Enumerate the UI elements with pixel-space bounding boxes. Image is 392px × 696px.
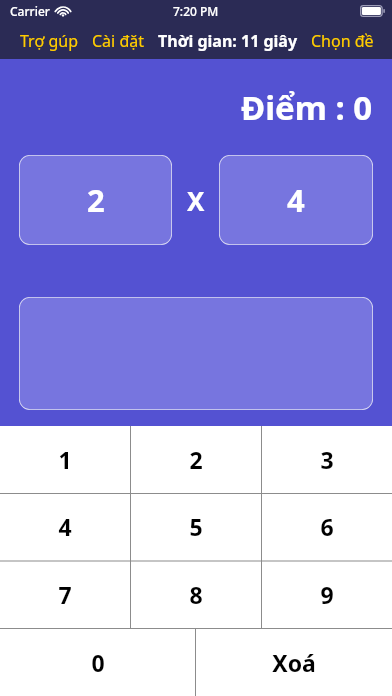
button[interactable]: 4 — [219, 155, 373, 245]
button[interactable]: Chọn đề — [307, 26, 378, 56]
button[interactable]: 6 — [262, 493, 392, 560]
staticText: 7 — [58, 579, 72, 610]
button[interactable]: Thời gian: 11 giây — [156, 26, 300, 56]
button[interactable] — [19, 297, 373, 410]
staticText: 3 — [320, 444, 334, 475]
staticText: 4 — [287, 179, 305, 221]
button[interactable]: 0 — [0, 628, 195, 696]
staticText: 7:20 PM — [173, 3, 219, 19]
staticText: 9 — [320, 579, 334, 610]
staticText: 4 — [58, 511, 72, 542]
staticText: Thời gian: 11 giây — [158, 30, 298, 52]
button[interactable]: 9 — [262, 560, 392, 628]
staticText: 6 — [320, 511, 334, 542]
button[interactable]: 3 — [262, 426, 392, 493]
staticText: 8 — [189, 579, 203, 610]
staticText: 5 — [189, 511, 203, 542]
staticText: Carrier — [10, 3, 50, 19]
staticText: 0 — [91, 647, 105, 678]
staticText: Cài đặt — [92, 30, 145, 52]
button[interactable]: 5 — [131, 493, 261, 560]
button[interactable]: 4 — [0, 493, 130, 560]
staticText: 2 — [87, 179, 105, 221]
button[interactable]: Cài đặt — [90, 26, 147, 56]
button[interactable]: 2 — [131, 426, 261, 493]
staticText: 1 — [58, 444, 72, 475]
button[interactable]: Trợ gúp — [18, 26, 80, 56]
button[interactable]: 7 — [0, 560, 130, 628]
button[interactable]: Xoá — [196, 628, 392, 696]
button[interactable]: 8 — [131, 560, 261, 628]
staticText: 2 — [189, 444, 203, 475]
staticText: Điểm : 0 — [241, 85, 373, 130]
button[interactable]: 2 — [19, 155, 172, 245]
staticText: Chọn đề — [311, 30, 374, 52]
staticText: Xoá — [272, 647, 316, 678]
staticText: Trợ gúp — [20, 30, 78, 52]
button[interactable]: 1 — [0, 426, 130, 493]
staticText: X — [187, 183, 205, 218]
